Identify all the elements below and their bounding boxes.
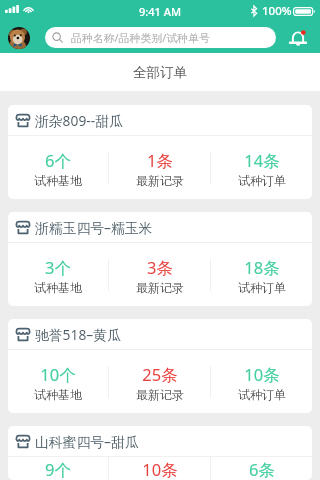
button[interactable]: 浙糯玉四号–糯玉米 xyxy=(8,212,312,306)
staticText: 最新记录 xyxy=(136,173,184,188)
staticText: 品种名称/品种类别/试种单号 xyxy=(71,30,210,45)
button[interactable]: 14条 xyxy=(211,136,312,199)
button[interactable]: Profile xyxy=(8,27,30,49)
button[interactable]: 9个 xyxy=(8,457,108,480)
button[interactable]: 3个 xyxy=(8,243,108,306)
button[interactable]: 山科蜜四号–甜瓜 xyxy=(8,426,312,480)
staticText: 100% xyxy=(262,3,292,19)
staticText: 18条 xyxy=(244,256,280,279)
button[interactable]: 1条 xyxy=(109,136,210,199)
staticText: 浙杂809--甜瓜 xyxy=(35,111,123,130)
button[interactable]: 品种名称/品种类别/试种单号 xyxy=(45,27,276,48)
staticText: 25条 xyxy=(142,363,178,386)
staticText: 最新记录 xyxy=(136,387,184,402)
staticText: 9:41 AM xyxy=(139,4,182,19)
button[interactable]: 3条 xyxy=(109,243,210,306)
staticText: 试种订单 xyxy=(238,280,286,295)
button[interactable]: 驰誉518–黄瓜 xyxy=(8,319,312,413)
staticText: 试种基地 xyxy=(34,280,82,295)
staticText: 试种订单 xyxy=(238,173,286,188)
button[interactable]: 10个 xyxy=(8,350,108,413)
staticText: 1条 xyxy=(147,149,173,172)
button[interactable]: 10条 xyxy=(211,350,312,413)
staticText: 14条 xyxy=(244,149,280,172)
staticText: 6个 xyxy=(45,149,71,172)
button[interactable]: 18条 xyxy=(211,243,312,306)
button[interactable]: 10条 xyxy=(109,457,210,480)
staticText: 10个 xyxy=(40,363,76,386)
button[interactable]: 25条 xyxy=(109,350,210,413)
staticText: 全部订单 xyxy=(133,64,188,81)
staticText: 10条 xyxy=(244,363,280,386)
staticText: 试种基地 xyxy=(34,173,82,188)
staticText: 3条 xyxy=(147,256,173,279)
button[interactable]: 浙杂809--甜瓜 xyxy=(8,105,312,199)
staticText: 10条 xyxy=(142,458,178,480)
staticText: 驰誉518–黄瓜 xyxy=(35,325,121,344)
staticText: 浙糯玉四号–糯玉米 xyxy=(35,218,153,237)
staticText: 6条 xyxy=(249,458,275,480)
button[interactable]: 6条 xyxy=(211,457,312,480)
staticText: 最新记录 xyxy=(136,280,184,295)
staticText: 3个 xyxy=(45,256,71,279)
staticText: 山科蜜四号–甜瓜 xyxy=(35,432,139,451)
button[interactable]: 6个 xyxy=(8,136,108,199)
button[interactable]: Notifications xyxy=(286,26,310,50)
staticText: 9个 xyxy=(45,458,71,480)
staticText: 试种基地 xyxy=(34,387,82,402)
staticText: 试种订单 xyxy=(238,387,286,402)
